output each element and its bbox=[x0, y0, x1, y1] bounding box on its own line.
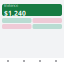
button[interactable] bbox=[2, 18, 31, 23]
button[interactable] bbox=[2, 24, 31, 29]
button[interactable]: Tab bbox=[16, 60, 32, 62]
button[interactable]: Tab bbox=[48, 60, 64, 62]
staticText: Balance bbox=[4, 2, 18, 8]
button[interactable]: Tab bbox=[32, 60, 48, 62]
button[interactable] bbox=[32, 24, 62, 29]
staticText: $1,240 bbox=[4, 9, 26, 18]
button[interactable]: Tab bbox=[0, 60, 16, 62]
button[interactable] bbox=[32, 18, 62, 23]
